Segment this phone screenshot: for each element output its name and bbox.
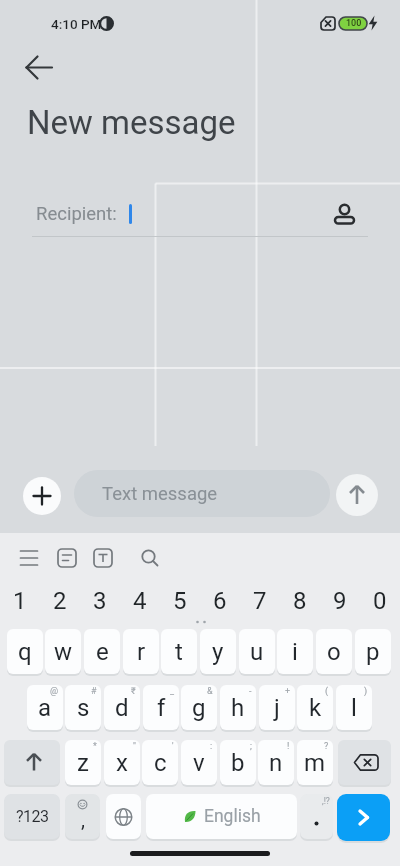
staticText: w [54,638,73,666]
staticText: 100 [346,18,362,29]
staticText: d [115,694,129,722]
staticText: f [157,694,166,722]
button[interactable]: 9 [320,586,360,616]
button[interactable]: d [104,685,140,730]
button[interactable]: x [104,740,140,785]
staticText: 1 [13,587,27,615]
button[interactable]: a [27,685,63,730]
staticText: a [38,694,52,722]
button[interactable]: , [65,794,100,839]
staticText: ' [172,741,174,752]
button[interactable] [338,740,391,785]
button[interactable]: u [239,629,275,674]
staticText: 8 [293,587,307,615]
button[interactable] [23,477,61,515]
staticText: ; [250,741,252,752]
button[interactable] [88,543,118,573]
staticText: 4:10 PM [51,16,102,32]
button[interactable]: w [45,629,81,674]
staticText: j [274,694,280,722]
staticText: , [81,808,85,831]
staticText: g [192,694,206,722]
staticText: u [250,638,264,666]
staticText: ? [324,741,329,752]
staticText: q [18,638,32,666]
button[interactable]: h [220,685,256,730]
button[interactable]: s [65,685,101,730]
button[interactable]: p [355,629,391,674]
button[interactable]: 1 [0,586,40,616]
staticText: 7 [253,587,267,615]
staticText: v [193,749,205,777]
button[interactable] [4,740,60,785]
button[interactable]: l [336,685,372,730]
button[interactable] [329,196,359,228]
staticText: ( [325,686,329,697]
button[interactable]: q [7,629,43,674]
button[interactable]: f [143,685,179,730]
button[interactable] [106,794,141,839]
button[interactable] [14,543,44,573]
staticText: # [91,686,97,697]
staticText: h [231,694,245,722]
button[interactable] [336,474,378,516]
staticText: & [207,686,213,697]
staticText: 2 [53,587,67,615]
staticText: * [93,741,97,752]
staticText: English [204,806,261,827]
button[interactable]: b [220,740,256,785]
staticText: New message [27,103,236,142]
staticText: t [175,638,183,666]
button[interactable]: z [65,740,101,785]
staticText: p [366,638,380,666]
button[interactable]: 5 [160,586,200,616]
button[interactable]: o [316,629,352,674]
button[interactable]: g [181,685,217,730]
staticText: m [304,749,326,777]
staticText: + [285,686,291,697]
button[interactable]: c [142,740,178,785]
staticText: _ [170,686,175,697]
button[interactable]: 6 [200,586,240,616]
staticText: i [292,638,298,666]
button[interactable] [135,543,165,573]
staticText: - [249,686,252,697]
button[interactable]: n [258,740,294,785]
button[interactable]: t [161,629,197,674]
button[interactable]: English [146,794,297,839]
button[interactable]: 4 [120,586,160,616]
button[interactable]: Text message [74,470,330,517]
button[interactable]: e [84,629,120,674]
button[interactable]: 3 [80,586,120,616]
button[interactable]: y [200,629,236,674]
staticText: ! [287,741,290,752]
button[interactable]: v [181,740,217,785]
button[interactable]: r [123,629,159,674]
staticText: 4 [133,587,147,615]
button[interactable]: 2 [40,586,80,616]
button[interactable]: i [277,629,313,674]
staticText: 5 [173,587,187,615]
staticText: s [77,694,90,722]
button[interactable]: 7 [240,586,280,616]
staticText: 9 [333,587,347,615]
button[interactable]: m [297,740,333,785]
staticText: " [133,741,136,752]
staticText: : [210,741,213,752]
staticText: Text message [102,483,218,505]
button[interactable] [18,50,62,86]
button[interactable] [337,794,390,841]
staticText: x [116,749,128,777]
button[interactable]: 8 [280,586,320,616]
button[interactable]: 0 [360,586,400,616]
staticText: c [154,749,167,777]
staticText: k [309,694,322,722]
button[interactable]: j [259,685,295,730]
button[interactable]: ?123 [4,794,60,839]
staticText: y [212,638,224,666]
button[interactable]: k [297,685,333,730]
staticText: l [351,694,357,722]
button[interactable] [52,543,82,573]
staticText: @ [50,686,59,697]
button[interactable]: ,!? [300,794,333,839]
